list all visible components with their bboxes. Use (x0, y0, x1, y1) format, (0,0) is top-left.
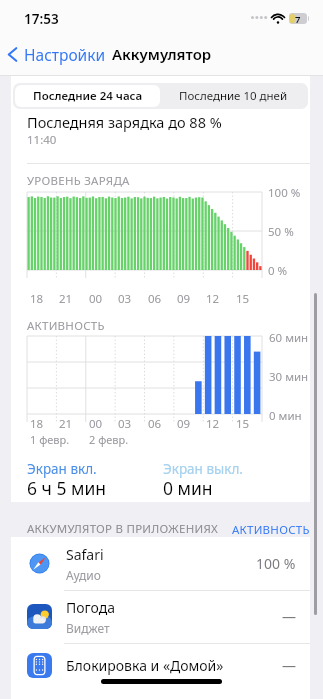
staticText: АКТИВНОСТЬ (232, 522, 310, 538)
button[interactable]: Последние 10 дней (160, 85, 306, 107)
staticText: 06 (148, 416, 162, 432)
staticText: 18 (30, 416, 44, 432)
staticText: 50 % (268, 224, 294, 240)
staticText: Экран выкл. (163, 460, 243, 478)
staticText: 15 (236, 416, 250, 432)
staticText: 60 мин (269, 330, 309, 346)
button[interactable]: АКТИВНОСТЬ (230, 519, 312, 541)
staticText: 15 (236, 291, 250, 307)
staticText: Safari (66, 545, 104, 564)
staticText: 7 (295, 13, 301, 24)
button[interactable]: Safari (11, 537, 310, 590)
button[interactable]: Блокировка и «Домой» (11, 641, 310, 689)
staticText: Экран вкл. (27, 460, 97, 478)
staticText: 100 % (268, 185, 301, 201)
staticText: Аудио (66, 567, 101, 583)
staticText: — (282, 607, 296, 626)
staticText: Блокировка и «Домой» (66, 656, 224, 675)
button[interactable]: Последние 24 часа (15, 85, 160, 107)
staticText: 100 % (256, 554, 296, 573)
staticText: 00 (89, 416, 103, 432)
staticText: 0 мин (163, 476, 213, 500)
staticText: 6 ч 5 мин (27, 476, 107, 500)
staticText: УРОВЕНЬ ЗАРЯДА (27, 173, 130, 189)
staticText: 0 % (268, 263, 288, 279)
staticText: 12 (206, 291, 220, 307)
staticText: 2 февр. (89, 432, 129, 447)
button[interactable]: Назад к Настройки (7, 44, 106, 65)
staticText: Последние 24 часа (33, 88, 143, 104)
staticText: Настройки (24, 44, 106, 65)
staticText: 1 февр. (30, 432, 70, 447)
staticText: 21 (59, 416, 73, 432)
staticText: 03 (118, 291, 132, 307)
staticText: Виджет (66, 620, 110, 636)
staticText: 00 (89, 291, 103, 307)
staticText: 06 (148, 291, 162, 307)
staticText: 18 (30, 291, 44, 307)
staticText: 12 (206, 416, 220, 432)
staticText: Аккумулятор (112, 44, 212, 64)
staticText: Последняя зарядка до 88 % (27, 112, 222, 132)
staticText: — (282, 656, 296, 675)
staticText: АККУМУЛЯТОР В ПРИЛОЖЕНИЯХ (27, 521, 218, 537)
staticText: 03 (118, 416, 132, 432)
staticText: 09 (177, 291, 191, 307)
staticText: 17:53 (24, 10, 59, 28)
staticText: Погода (66, 598, 116, 617)
staticText: 30 мин (269, 369, 309, 385)
staticText: АКТИВНОСТЬ (27, 318, 105, 334)
staticText: Последние 10 дней (179, 88, 288, 104)
staticText: 21 (59, 291, 73, 307)
staticText: 09 (177, 416, 191, 432)
staticText: 0 мин (269, 408, 302, 424)
staticText: 11:40 (27, 132, 57, 148)
button[interactable]: Погода (11, 590, 310, 643)
